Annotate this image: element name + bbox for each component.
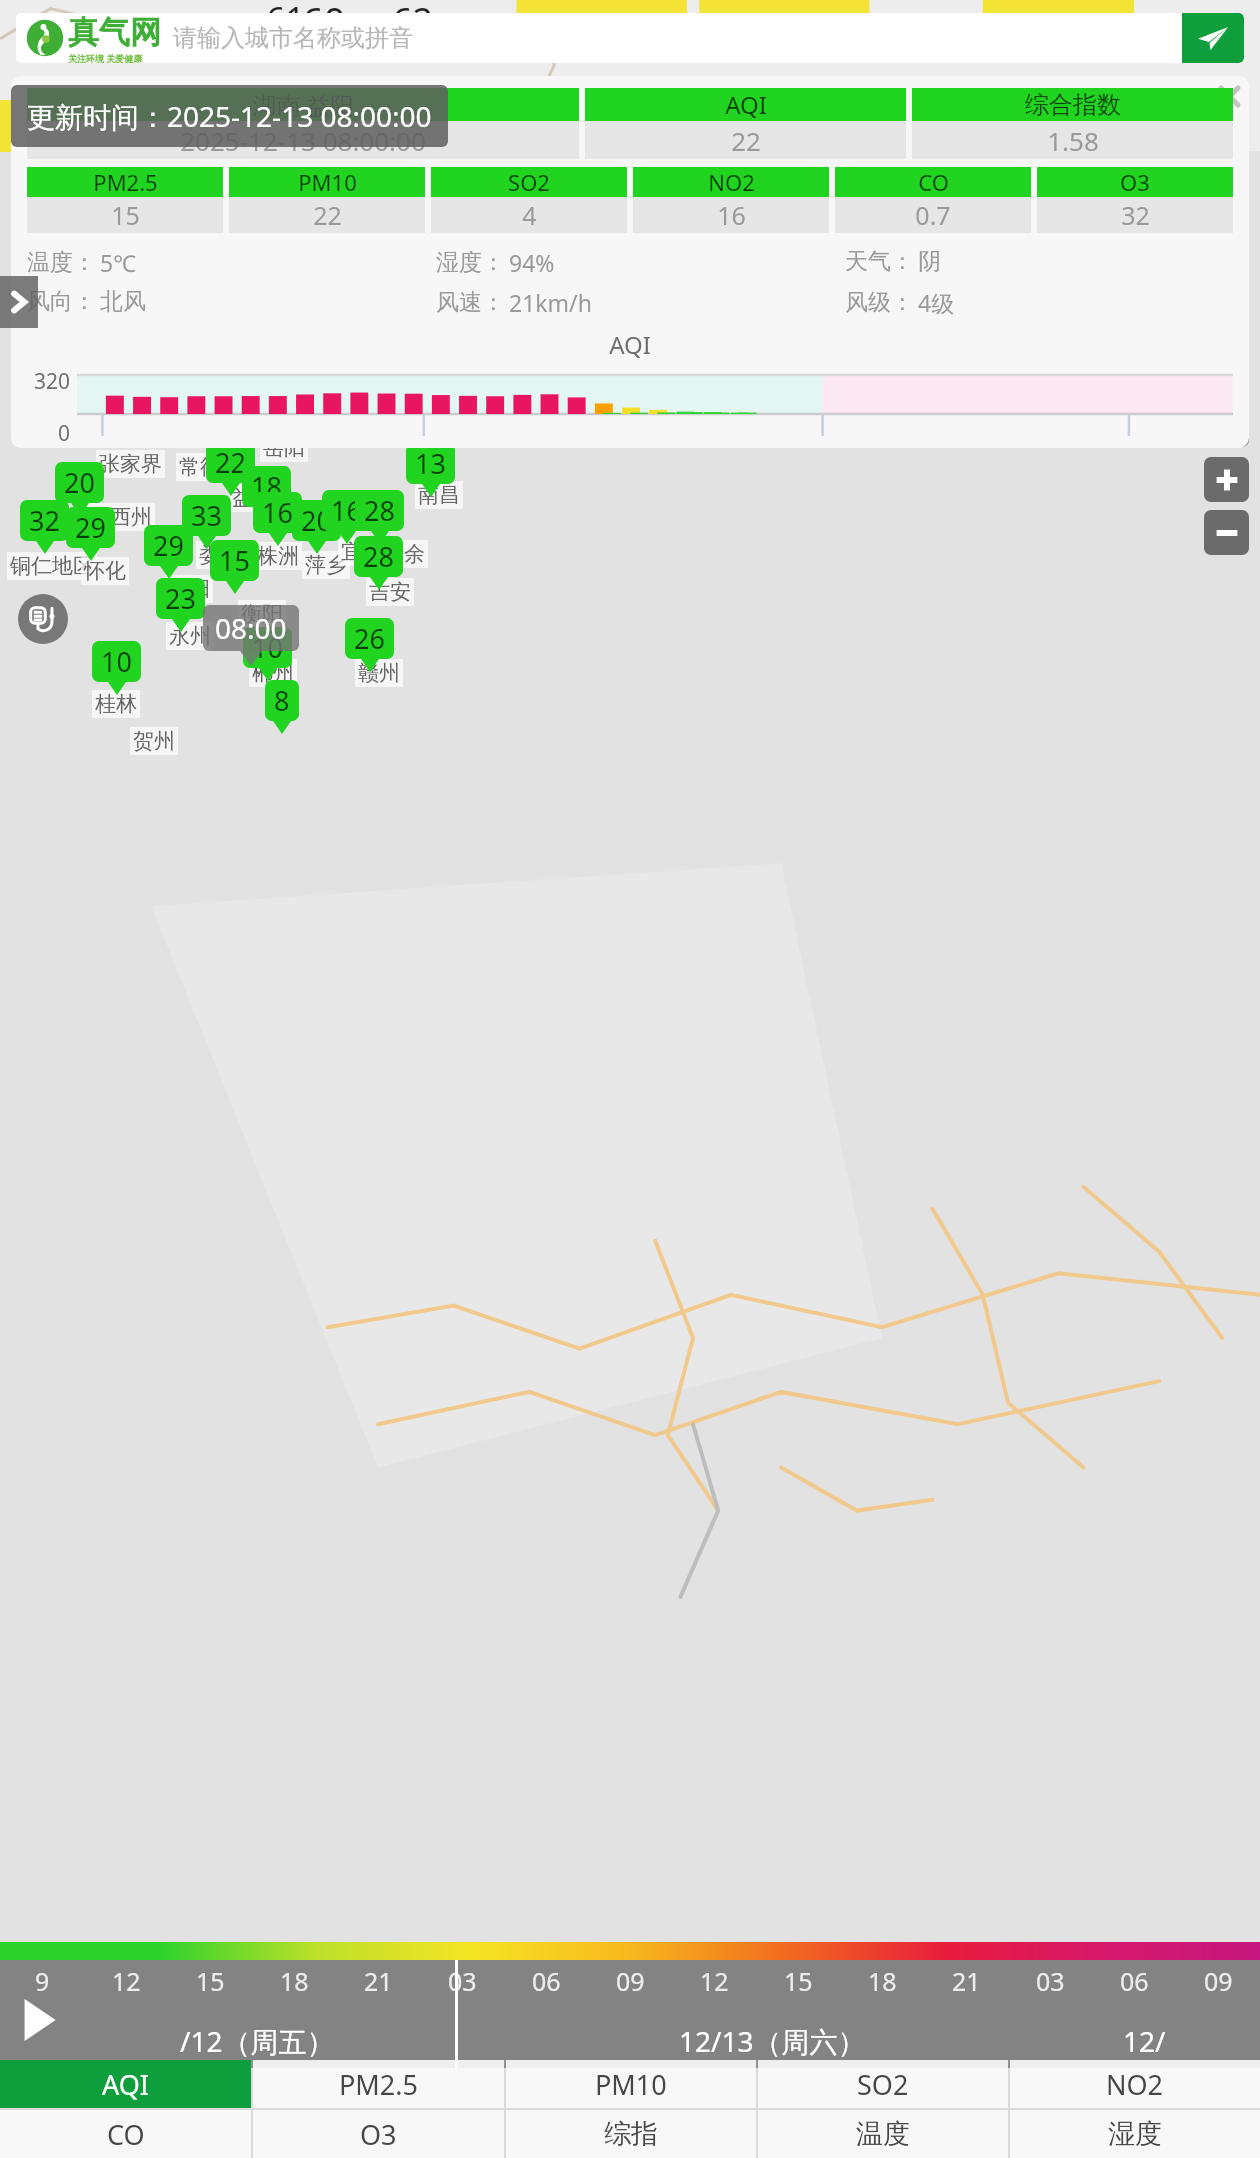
staticText: 益阳 bbox=[232, 485, 274, 511]
button[interactable]: 综合指数 bbox=[912, 88, 1233, 159]
staticText: O3 bbox=[360, 2116, 397, 2153]
staticText: 06 bbox=[532, 1964, 561, 1998]
button[interactable]: 28 bbox=[364, 492, 395, 529]
staticText: 10 bbox=[101, 643, 132, 680]
staticText: 综合指数 bbox=[1025, 90, 1121, 120]
button[interactable]: PM2.5 bbox=[253, 2060, 504, 2108]
staticText: NO2 bbox=[708, 167, 755, 197]
staticText: O3 bbox=[1120, 167, 1150, 197]
staticText: 20 bbox=[301, 502, 332, 539]
staticText: AQI bbox=[27, 328, 1233, 361]
button[interactable]: 16 bbox=[331, 492, 362, 529]
staticText: 29 bbox=[75, 509, 106, 546]
staticText: 21 bbox=[952, 1964, 981, 1998]
button[interactable]: 29 bbox=[153, 527, 184, 564]
staticText: CO bbox=[107, 2116, 145, 2153]
staticText: 18 bbox=[251, 468, 282, 505]
staticText: 风速： bbox=[436, 288, 505, 317]
staticText: 26 bbox=[354, 620, 385, 657]
staticText: 贺州 bbox=[133, 728, 175, 754]
button[interactable]: 33 bbox=[191, 497, 222, 534]
button[interactable]: 13 bbox=[415, 445, 446, 482]
button[interactable]: 10 bbox=[252, 629, 283, 666]
staticText: 真气网 bbox=[68, 13, 161, 52]
staticText: 娄底 bbox=[199, 542, 241, 568]
staticText: 12/ bbox=[1123, 2022, 1166, 2060]
staticText: 邵阳 bbox=[168, 576, 210, 602]
button[interactable]: 8 bbox=[274, 682, 290, 719]
button[interactable]: Locate bbox=[1204, 402, 1249, 447]
button[interactable]: 10 bbox=[101, 643, 132, 680]
staticText: 湖南 益阳 bbox=[252, 88, 355, 121]
button[interactable]: CO bbox=[0, 2110, 251, 2158]
button[interactable]: 湖南 益阳 bbox=[27, 88, 579, 159]
staticText: 61 bbox=[266, 0, 305, 42]
button[interactable]: O3 bbox=[253, 2110, 504, 2158]
button[interactable]: 20 bbox=[301, 502, 332, 539]
button[interactable]: PM2.5 bbox=[27, 167, 223, 233]
staticText: 28 bbox=[363, 538, 394, 575]
staticText: 常德 bbox=[179, 454, 221, 480]
staticText: 郴州 bbox=[252, 660, 294, 686]
staticText: AQI bbox=[725, 88, 767, 121]
staticText: 33 bbox=[191, 497, 222, 534]
button[interactable]: 20 bbox=[64, 464, 95, 501]
staticText: 94% bbox=[509, 247, 555, 278]
staticText: 1.58 bbox=[1047, 123, 1099, 158]
button[interactable]: O3 bbox=[1037, 167, 1233, 233]
staticText: 12/13（周六） bbox=[679, 2022, 866, 2060]
button[interactable]: Ranking bbox=[1204, 349, 1249, 394]
button[interactable]: Search bbox=[1182, 13, 1244, 63]
staticText: 22 bbox=[313, 198, 342, 232]
button[interactable]: 18 bbox=[251, 468, 282, 505]
staticText: 请输入城市名称或拼音 bbox=[173, 23, 413, 53]
button[interactable]: 26 bbox=[354, 620, 385, 657]
button[interactable]: NO2 bbox=[1010, 2060, 1260, 2108]
staticText: 温度： bbox=[27, 248, 96, 277]
button[interactable]: 16 bbox=[262, 494, 293, 531]
staticText: 03 bbox=[448, 1964, 477, 1998]
button[interactable]: 23 bbox=[165, 580, 196, 617]
button[interactable]: Report bbox=[18, 594, 68, 644]
button[interactable]: CO bbox=[835, 167, 1031, 233]
staticText: 09 bbox=[616, 1964, 645, 1998]
staticText: 9 bbox=[35, 1964, 50, 1998]
staticText: PM2.5 bbox=[339, 2066, 418, 2103]
button[interactable]: 29 bbox=[75, 509, 106, 546]
button[interactable]: NO2 bbox=[633, 167, 829, 233]
staticText: 21km/h bbox=[509, 287, 592, 318]
button[interactable]: 综指 bbox=[506, 2110, 756, 2158]
staticText: 15 bbox=[111, 198, 140, 232]
button[interactable]: PM10 bbox=[506, 2060, 756, 2108]
button[interactable]: 温度 bbox=[758, 2110, 1008, 2158]
staticText: 320 bbox=[34, 367, 71, 396]
staticText: AQI bbox=[102, 2066, 149, 2103]
button[interactable]: Next bbox=[0, 276, 38, 328]
button[interactable]: 15 bbox=[219, 542, 250, 579]
button[interactable]: 22 bbox=[215, 444, 246, 481]
button[interactable]: 28 bbox=[363, 538, 394, 575]
button[interactable]: 湿度 bbox=[1010, 2110, 1260, 2158]
button[interactable]: 真气网 bbox=[16, 13, 1182, 63]
button[interactable]: 32 bbox=[29, 502, 60, 539]
staticText: 0 bbox=[58, 419, 71, 448]
button[interactable]: Play bbox=[10, 1992, 66, 2048]
staticText: 62 bbox=[392, 0, 434, 45]
staticText: 风向： bbox=[27, 287, 96, 316]
staticText: 10 bbox=[252, 629, 283, 666]
button[interactable]: SO2 bbox=[431, 167, 627, 233]
button[interactable]: AQI bbox=[585, 88, 906, 159]
button[interactable]: Close bbox=[1209, 76, 1249, 116]
button[interactable]: Zoom out bbox=[1204, 510, 1249, 555]
staticText: 12 bbox=[700, 1964, 729, 1998]
staticText: 温度 bbox=[856, 2117, 910, 2151]
staticText: 60 bbox=[302, 0, 346, 46]
button[interactable]: AQI bbox=[0, 2060, 251, 2108]
button[interactable]: SO2 bbox=[758, 2060, 1008, 2108]
staticText: 32 bbox=[29, 502, 60, 539]
staticText: 22 bbox=[731, 123, 761, 158]
button[interactable]: PM10 bbox=[229, 167, 425, 233]
button[interactable]: Zoom in bbox=[1204, 457, 1249, 502]
staticText: 5℃ bbox=[100, 247, 137, 278]
